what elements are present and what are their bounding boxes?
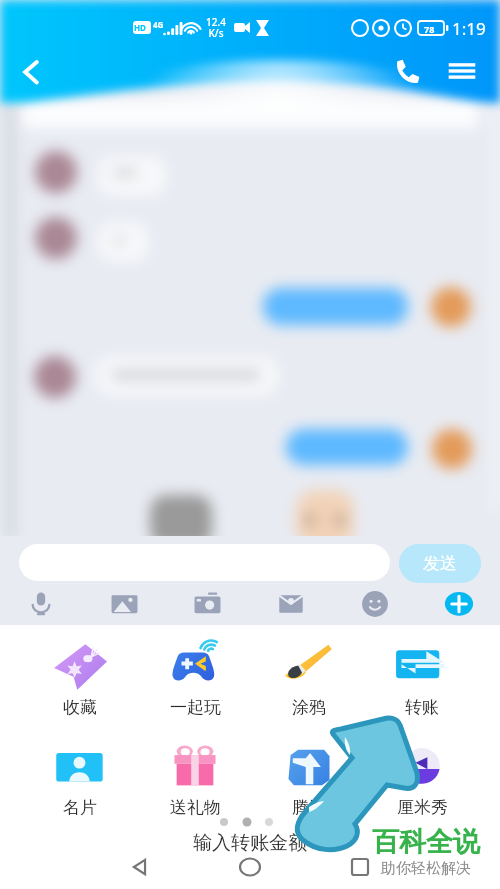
button[interactable]: 发送 — [399, 544, 481, 583]
staticText: 厘米秀 — [397, 797, 448, 818]
button[interactable]: Camera — [185, 582, 229, 626]
staticText: 涂鸦 — [292, 697, 326, 718]
button[interactable]: Recents — [337, 844, 383, 889]
staticText: 1:19 — [452, 17, 486, 40]
button[interactable]: 厘米秀 — [369, 740, 475, 818]
button[interactable]: Voice message — [19, 582, 63, 626]
staticText: 名片 — [63, 797, 97, 818]
staticText: 转账 — [405, 697, 439, 718]
staticText: 12.4 K/s — [206, 15, 226, 40]
button[interactable]: 送礼物 — [142, 740, 248, 818]
button[interactable]: 转账 — [369, 640, 475, 718]
staticText: HD — [134, 22, 146, 33]
button[interactable]: Emoji — [353, 582, 397, 626]
button[interactable]: Gallery — [102, 582, 146, 626]
button[interactable] — [19, 544, 390, 581]
button[interactable]: 一起玩 — [142, 640, 248, 718]
staticText: 4G — [153, 19, 164, 30]
staticText: 收藏 — [63, 697, 97, 718]
staticText: 78 — [424, 23, 435, 35]
button[interactable]: 腾讯 — [256, 740, 362, 818]
staticText: 助你轻松解决 — [381, 859, 471, 878]
staticText: 送礼物 — [170, 797, 221, 818]
staticText: 发送 — [423, 553, 457, 574]
button[interactable]: 涂鸦 — [256, 640, 362, 718]
button[interactable]: 名片 — [27, 740, 133, 818]
staticText: 腾讯 — [292, 797, 326, 818]
staticText: 输入转账金额 — [193, 831, 307, 855]
button[interactable]: Red packet — [269, 582, 313, 626]
button[interactable]: Back — [12, 52, 52, 92]
button[interactable]: More — [437, 582, 481, 626]
button[interactable]: Menu — [444, 53, 480, 89]
button[interactable]: Back — [117, 844, 163, 889]
staticText: 百科全说 — [372, 825, 480, 859]
button[interactable]: Call — [389, 53, 427, 91]
button[interactable]: 收藏 — [27, 640, 133, 718]
staticText: 一起玩 — [170, 697, 221, 718]
button[interactable]: Home — [227, 844, 273, 889]
